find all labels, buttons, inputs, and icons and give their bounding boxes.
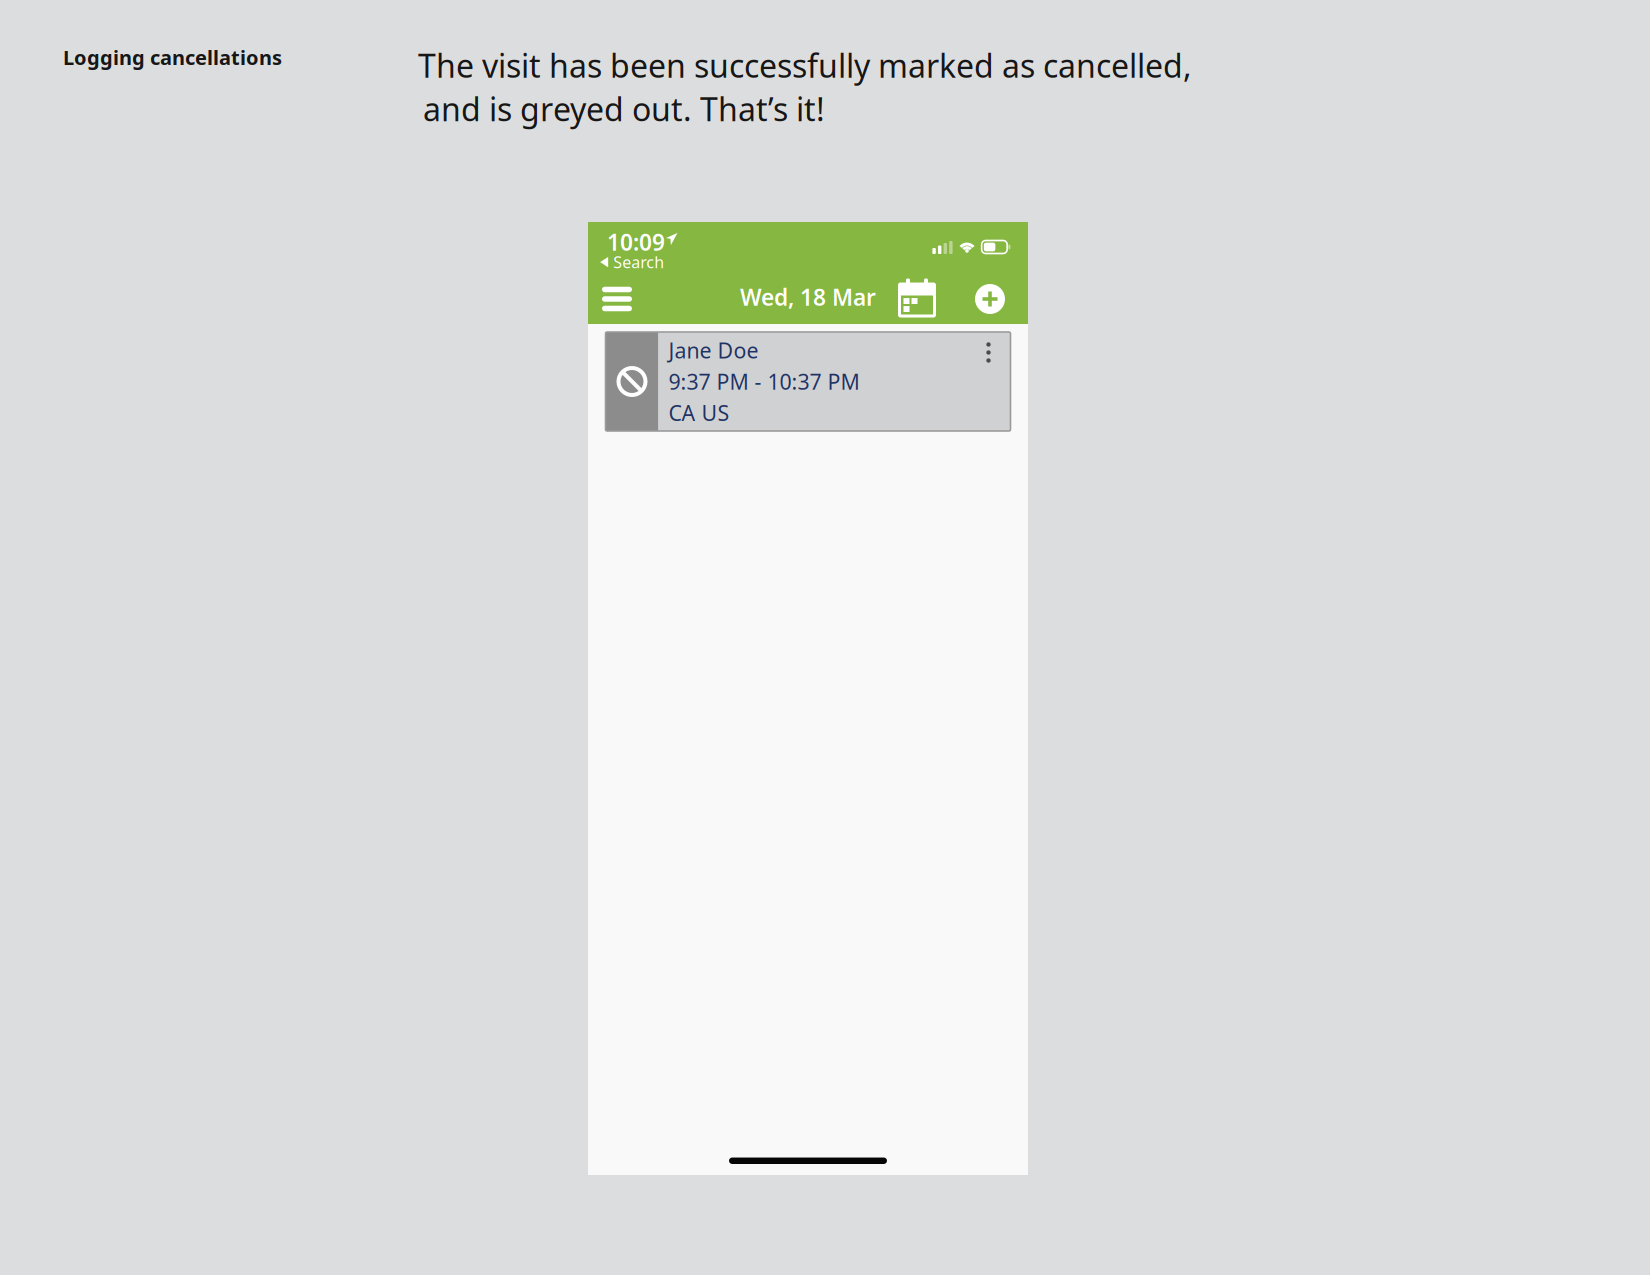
button[interactable]: Jane Doe <box>605 332 1010 431</box>
button[interactable]: Menu <box>593 277 641 321</box>
staticText: Wed, 18 Mar <box>740 282 876 312</box>
button[interactable]: Calendar <box>893 276 941 320</box>
button[interactable]: Back to Search <box>600 249 664 275</box>
staticText: and is greyed out. That’s it! <box>423 87 825 130</box>
staticText: Jane Doe <box>668 336 758 364</box>
staticText: The visit has been successfully marked a… <box>418 44 1192 86</box>
staticText: CA US <box>668 399 729 427</box>
staticText: Search <box>613 251 664 273</box>
staticText: 9:37 PM - 10:37 PM <box>668 367 859 396</box>
button[interactable]: Add visit <box>968 277 1012 321</box>
staticText: 10:09 <box>607 227 665 257</box>
staticText: Logging cancellations <box>63 44 282 71</box>
